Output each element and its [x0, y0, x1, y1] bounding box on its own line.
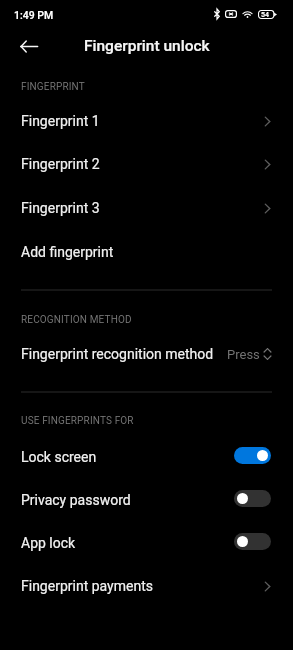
button[interactable]: Off — [234, 490, 271, 507]
staticText: Add fingerprint — [21, 244, 271, 260]
button[interactable]: Back — [12, 29, 46, 63]
staticText: Fingerprint recognition method — [21, 346, 214, 362]
button[interactable]: Fingerprint 3 — [0, 186, 293, 230]
staticText: Lock screen — [21, 449, 234, 465]
button[interactable]: App lock — [0, 521, 293, 565]
staticText: 1:49 PM — [14, 9, 54, 21]
staticText: Privacy password — [21, 492, 234, 508]
button[interactable]: Add fingerprint — [0, 230, 293, 274]
staticText: Fingerprint unlock — [84, 37, 210, 55]
button[interactable]: On — [234, 447, 271, 464]
staticText: Fingerprint 3 — [21, 200, 264, 216]
button[interactable]: Privacy password — [0, 478, 293, 522]
button[interactable]: Off — [234, 533, 271, 550]
button[interactable]: Fingerprint payments — [0, 564, 293, 608]
staticText: Press — [227, 347, 260, 362]
staticText: App lock — [21, 535, 234, 551]
staticText: USE FINGERPRINTS FOR — [21, 415, 134, 427]
staticText: 54 — [261, 11, 269, 19]
staticText: Fingerprint 2 — [21, 156, 264, 172]
button[interactable]: Fingerprint 2 — [0, 142, 293, 186]
staticText: Fingerprint payments — [21, 578, 264, 594]
staticText: FINGERPRINT — [21, 81, 85, 93]
button[interactable]: Fingerprint recognition method — [0, 332, 293, 376]
staticText: RECOGNITION METHOD — [21, 314, 132, 326]
button[interactable]: Fingerprint 1 — [0, 99, 293, 143]
button[interactable]: Lock screen — [0, 435, 293, 479]
staticText: Fingerprint 1 — [21, 113, 264, 129]
